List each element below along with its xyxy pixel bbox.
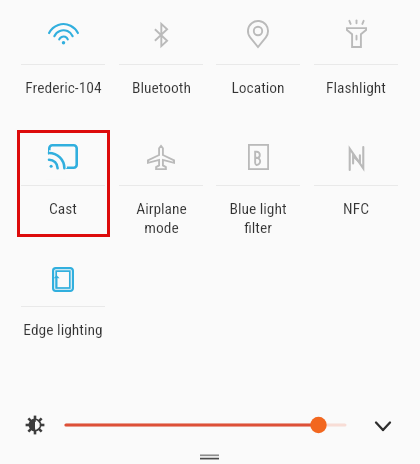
other: Flashlight: [346, 20, 367, 48]
staticText: Frederic-104: [25, 79, 102, 97]
staticText: Edge lighting: [23, 321, 103, 339]
other: Edge lighting: [52, 267, 74, 292]
other: NFC: [348, 146, 365, 171]
staticText: NFC: [343, 200, 369, 218]
button[interactable]: NFC: [307, 121, 405, 218]
staticText: Cast: [49, 200, 77, 218]
other: Wi-Fi: [48, 23, 79, 44]
staticText: Bluetooth: [132, 79, 191, 97]
button[interactable]: Airplane mode: [112, 121, 210, 237]
button[interactable]: Bluetooth: [112, 0, 210, 97]
other: Location: [247, 20, 269, 48]
button[interactable]: Blue light filter: [209, 121, 307, 237]
other: Blue light filter: [248, 144, 269, 170]
button[interactable]: Brightness: [0, 405, 420, 445]
button[interactable]: Location: [209, 0, 307, 97]
staticText: Blue light filter: [229, 200, 287, 237]
button[interactable]: Wi-Fi: [14, 0, 112, 97]
button[interactable]: Flashlight: [307, 0, 405, 97]
staticText: Flashlight: [326, 79, 386, 97]
button[interactable]: Edge lighting: [14, 242, 112, 339]
other: Airplane mode: [147, 145, 175, 170]
button[interactable]: Cast: [14, 121, 112, 218]
other: Cast: [48, 144, 78, 169]
staticText: Airplane mode: [136, 200, 187, 237]
staticText: Location: [231, 79, 285, 97]
other: Bluetooth: [153, 22, 169, 48]
